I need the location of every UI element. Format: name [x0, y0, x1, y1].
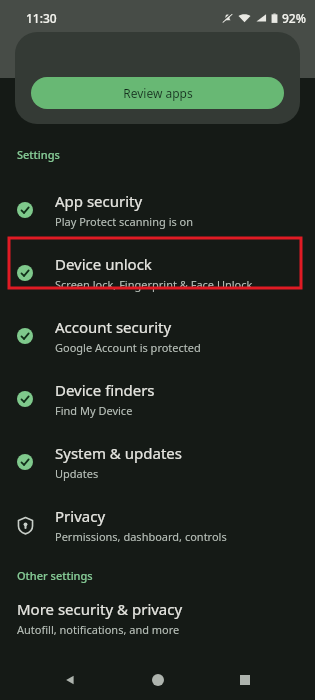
staticText: Review apps	[123, 85, 193, 101]
staticText: Play Protect scanning is on	[55, 214, 194, 229]
staticText: 11:30	[26, 10, 57, 26]
staticText: Device unlock	[55, 254, 152, 274]
button[interactable]: Privacy	[0, 493, 315, 556]
staticText: App security	[55, 191, 143, 211]
staticText: Updates	[55, 466, 99, 481]
button[interactable]: Home	[141, 663, 175, 697]
button[interactable]: Account security	[0, 304, 315, 367]
button[interactable]: More security & privacy	[0, 597, 315, 645]
staticText: Privacy	[55, 506, 106, 526]
button[interactable]: System & updates	[0, 430, 315, 493]
button[interactable]: App security	[0, 178, 315, 241]
button[interactable]: Device unlock	[0, 241, 315, 304]
staticText: Settings	[17, 147, 60, 162]
staticText: System & updates	[55, 443, 182, 463]
staticText: Device finders	[55, 380, 155, 400]
button[interactable]: Review apps	[31, 77, 284, 109]
button[interactable]: Recent apps	[228, 663, 262, 697]
staticText: Other settings	[17, 568, 93, 583]
staticText: Google Account is protected	[55, 340, 201, 355]
button[interactable]: Device finders	[0, 367, 315, 430]
staticText: 92%	[282, 10, 306, 26]
staticText: Account security	[55, 317, 172, 337]
staticText: Permissions, dashboard, controls	[55, 529, 227, 544]
button[interactable]: Back	[8, 42, 38, 72]
button[interactable]: Back	[53, 663, 87, 697]
staticText: Screen lock, Fingerprint & Face Unlock	[55, 277, 253, 292]
staticText: Find My Device	[55, 403, 133, 418]
staticText: Autofill, notifications, and more	[17, 622, 180, 637]
staticText: More security & privacy	[17, 599, 183, 619]
